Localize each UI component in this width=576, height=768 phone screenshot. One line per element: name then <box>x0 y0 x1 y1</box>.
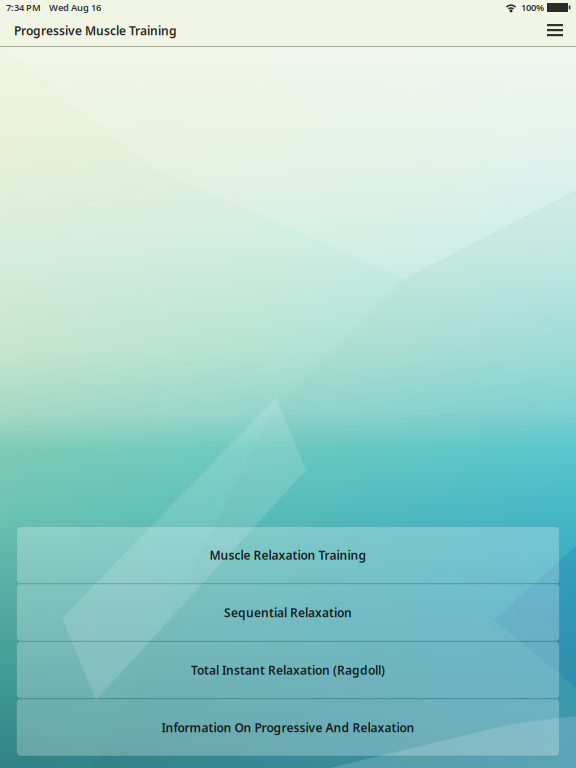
staticText: 100% <box>521 1 544 14</box>
staticText: Progressive Muscle Training <box>14 22 177 38</box>
staticText: Sequential Relaxation <box>224 604 352 620</box>
staticText: Muscle Relaxation Training <box>209 547 366 563</box>
button[interactable]: Muscle Relaxation Training <box>16 526 559 583</box>
button[interactable]: Sequential Relaxation <box>16 584 559 641</box>
button[interactable]: Total Instant Relaxation (Ragdoll) <box>16 641 559 698</box>
staticText: Information On Progressive And Relaxatio… <box>161 719 414 735</box>
staticText: 7:34 PM <box>6 1 41 14</box>
button[interactable]: Menu <box>540 15 570 46</box>
staticText: Total Instant Relaxation (Ragdoll) <box>191 662 385 678</box>
staticText: Wed Aug 16 <box>49 1 101 14</box>
button[interactable]: Information On Progressive And Relaxatio… <box>16 699 559 756</box>
